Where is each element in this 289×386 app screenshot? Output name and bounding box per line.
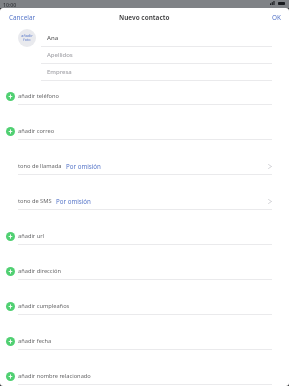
button[interactable]: añadir correo <box>0 123 289 139</box>
button[interactable]: Ana <box>41 30 289 46</box>
button[interactable]: tono de SMS <box>0 193 289 209</box>
staticText: Ana <box>47 34 59 42</box>
staticText: añadir nombre relacionado <box>18 372 91 380</box>
staticText: añadir url <box>18 232 45 240</box>
staticText: añadir cumpleaños <box>18 302 70 310</box>
staticText: añadir teléfono <box>18 92 59 100</box>
button[interactable]: añadir cumpleaños <box>0 298 289 314</box>
staticText: Nuevo contacto <box>119 13 170 22</box>
staticText: Cancelar <box>9 13 36 22</box>
button[interactable]: Empresa <box>41 64 289 80</box>
staticText: añadir correo <box>18 127 55 135</box>
staticText: 10:00 <box>3 1 17 8</box>
button[interactable]: OK <box>264 10 289 25</box>
button[interactable]: añadir teléfono <box>0 88 289 104</box>
button[interactable]: añadir dirección <box>0 263 289 279</box>
button[interactable]: Apellidos <box>41 47 289 63</box>
staticText: añadir dirección <box>18 267 61 275</box>
staticText: tono de llamada <box>18 162 62 170</box>
staticText: OK <box>272 13 281 22</box>
button[interactable]: tono de llamada <box>0 158 289 174</box>
staticText: tono de SMS <box>18 197 52 205</box>
button[interactable]: añadir url <box>0 228 289 244</box>
staticText: Por omisión <box>56 197 91 205</box>
staticText: Empresa <box>47 68 72 76</box>
button[interactable]: Cancelar <box>0 10 45 25</box>
button[interactable]: añadir nombre relacionado <box>0 368 289 384</box>
staticText: añadir fecha <box>18 337 52 345</box>
button[interactable]: añadir fecha <box>0 333 289 349</box>
staticText: añadir foto <box>21 33 33 43</box>
staticText: Apellidos <box>47 51 73 59</box>
button[interactable]: Añadir foto <box>18 29 36 47</box>
staticText: Por omisión <box>66 162 101 170</box>
